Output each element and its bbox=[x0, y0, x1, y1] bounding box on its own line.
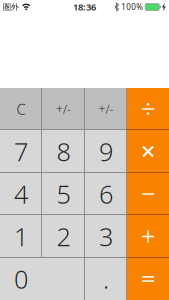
staticText: 圏外 bbox=[3, 2, 19, 12]
button[interactable]: +/- bbox=[85, 88, 127, 130]
button[interactable]: 8 bbox=[42, 130, 85, 173]
button[interactable] bbox=[127, 88, 169, 130]
button[interactable]: 1 bbox=[0, 215, 42, 258]
staticText: 4 bbox=[14, 177, 28, 211]
button[interactable]: 0 bbox=[0, 258, 85, 300]
button[interactable]: 4 bbox=[0, 173, 42, 215]
staticText: 6 bbox=[99, 177, 113, 211]
button[interactable]: . bbox=[85, 258, 127, 300]
staticText: 9 bbox=[99, 135, 113, 168]
button[interactable] bbox=[127, 173, 169, 215]
button[interactable]: 7 bbox=[0, 130, 42, 173]
button[interactable]: C bbox=[0, 88, 42, 130]
button[interactable]: 2 bbox=[42, 215, 85, 258]
button[interactable] bbox=[127, 130, 169, 173]
staticText: . bbox=[103, 262, 109, 296]
staticText: +/- bbox=[56, 101, 71, 117]
button[interactable]: 6 bbox=[85, 173, 127, 215]
button[interactable]: 9 bbox=[85, 130, 127, 173]
button[interactable]: +/- bbox=[42, 88, 85, 130]
staticText: 100% bbox=[121, 2, 143, 12]
staticText: 3 bbox=[99, 220, 113, 253]
staticText: 1 bbox=[14, 220, 28, 253]
button[interactable]: 3 bbox=[85, 215, 127, 258]
staticText: 7 bbox=[14, 135, 28, 168]
staticText: +/- bbox=[98, 101, 113, 117]
staticText: 8 bbox=[56, 135, 70, 168]
button[interactable]: 5 bbox=[42, 173, 85, 215]
staticText: 18:36 bbox=[73, 1, 96, 13]
staticText: 0 bbox=[14, 262, 28, 296]
button[interactable] bbox=[127, 215, 169, 258]
staticText: C bbox=[16, 99, 25, 119]
staticText: 5 bbox=[56, 177, 70, 211]
button[interactable] bbox=[127, 258, 169, 300]
staticText: 2 bbox=[56, 220, 70, 253]
